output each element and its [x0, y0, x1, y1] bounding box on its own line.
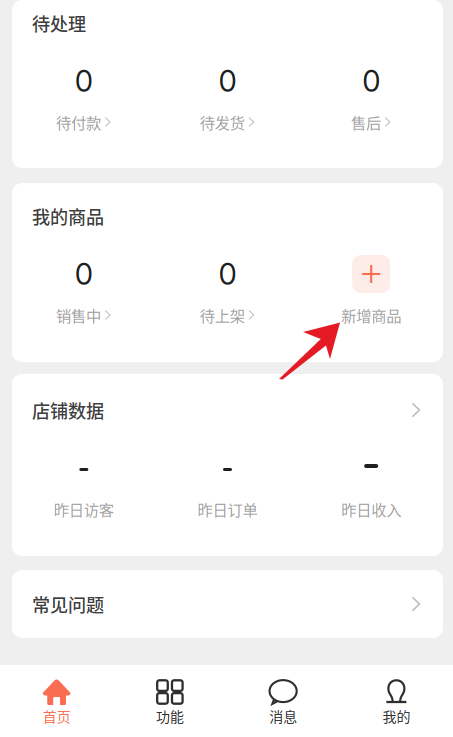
- staticText: 功能: [156, 706, 184, 726]
- button[interactable]: 0: [12, 262, 156, 322]
- button[interactable]: 昨日收入: [299, 456, 443, 516]
- staticText: 销售中: [56, 304, 101, 326]
- button[interactable]: 0: [12, 69, 156, 129]
- staticText: 昨日订单: [197, 498, 257, 520]
- button[interactable]: 0: [299, 69, 443, 129]
- staticText: 0: [75, 63, 93, 99]
- staticText: 待付款: [56, 111, 101, 133]
- button[interactable]: 昨日访客: [12, 456, 156, 516]
- staticText: 店铺数据: [32, 397, 104, 423]
- button[interactable]: 新增商品: [299, 262, 443, 322]
- button[interactable]: 常见问题: [12, 570, 443, 638]
- staticText: 0: [218, 256, 236, 292]
- staticText: 0: [218, 63, 236, 99]
- staticText: 待发货: [200, 111, 245, 133]
- staticText: 常见问题: [32, 591, 104, 617]
- staticText: 消息: [269, 706, 297, 726]
- button[interactable]: 首页: [0, 665, 113, 737]
- staticText: 首页: [43, 706, 71, 726]
- button[interactable]: 功能: [113, 665, 226, 737]
- staticText: 我的: [382, 706, 410, 726]
- button[interactable]: 0: [156, 262, 299, 322]
- button[interactable]: 0: [156, 69, 299, 129]
- staticText: 我的商品: [32, 203, 104, 229]
- staticText: 待上架: [200, 304, 245, 326]
- staticText: 0: [362, 63, 380, 99]
- staticText: 待处理: [32, 10, 86, 36]
- button[interactable]: 昨日订单: [156, 456, 299, 516]
- button[interactable]: 消息: [226, 665, 340, 737]
- staticText: 昨日访客: [54, 498, 114, 520]
- staticText: 售后: [351, 111, 381, 133]
- staticText: 昨日收入: [341, 498, 401, 520]
- button[interactable]: 我的: [340, 665, 453, 737]
- staticText: 0: [75, 256, 93, 292]
- staticText: 新增商品: [341, 304, 401, 326]
